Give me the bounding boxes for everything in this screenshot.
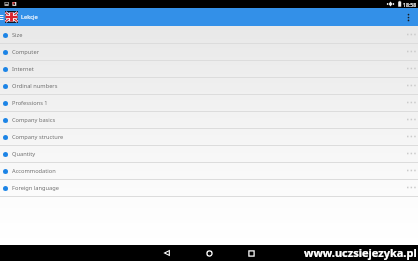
staticText: Accommodation	[12, 167, 56, 175]
button[interactable]: Company structure	[0, 129, 418, 146]
staticText: Company structure	[12, 133, 64, 141]
button[interactable]: Home	[197, 245, 221, 261]
button[interactable]: Company basics	[0, 112, 418, 129]
staticText: Company basics	[12, 116, 56, 124]
staticText: Computer	[12, 48, 39, 56]
staticText: Professions 1	[12, 99, 48, 107]
button[interactable]: More options	[400, 8, 416, 26]
button[interactable]: Quantity	[0, 146, 418, 163]
button[interactable]: Foreign language	[0, 180, 418, 197]
staticText: Lekcje	[21, 13, 38, 21]
button[interactable]: Professions 1	[0, 95, 418, 112]
staticText: www.uczsiejezyka.pl	[304, 245, 417, 260]
staticText: Size	[12, 31, 23, 39]
staticText: Quantity	[12, 150, 36, 158]
button[interactable]: Accommodation	[0, 163, 418, 180]
button[interactable]: Recent apps	[239, 245, 263, 261]
button[interactable]: Computer	[0, 44, 418, 61]
button[interactable]: Ordinal numbers	[0, 78, 418, 95]
staticText: Ordinal numbers	[12, 82, 58, 90]
staticText: Internet	[12, 65, 34, 73]
button[interactable]: Open navigation drawer	[0, 8, 5, 26]
button[interactable]: Internet	[0, 61, 418, 78]
staticText: Foreign language	[12, 184, 59, 192]
button[interactable]: Size	[0, 27, 418, 44]
button[interactable]: Back	[155, 245, 179, 261]
staticText: 18:58	[403, 1, 417, 8]
